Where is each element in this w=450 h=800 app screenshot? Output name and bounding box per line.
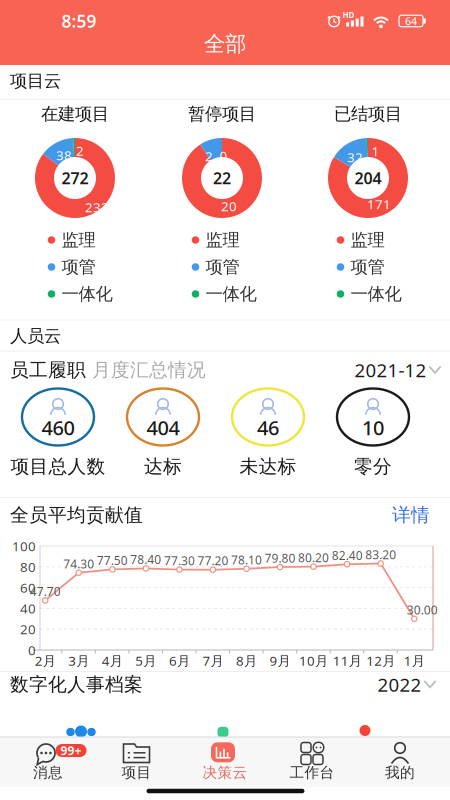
staticText: 零分 — [354, 455, 392, 478]
staticText: 10月 — [299, 652, 328, 669]
staticText: 0 — [28, 641, 36, 659]
staticText: 20 — [20, 620, 36, 638]
staticText: 82.40 — [332, 547, 363, 563]
button[interactable]: 工作台 — [270, 737, 360, 793]
staticText: 1 — [371, 142, 379, 160]
staticText: 项管 — [205, 256, 239, 278]
staticText: 7月 — [202, 652, 223, 669]
staticText: 78.40 — [130, 551, 161, 567]
staticText: 3月 — [68, 652, 89, 669]
staticText: 监理 — [61, 229, 95, 251]
staticText: 79.80 — [264, 550, 295, 566]
staticText: 8:59 — [61, 9, 96, 32]
staticText: 未达标 — [239, 455, 296, 478]
staticText: 171 — [367, 195, 391, 213]
staticText: 监理 — [350, 229, 384, 251]
staticText: 99+ — [60, 742, 81, 758]
staticText: 暂停项目 — [188, 103, 256, 125]
staticText: 一体化 — [205, 283, 256, 305]
staticText: 已结项目 — [334, 103, 402, 125]
button[interactable]: 99+ — [0, 737, 90, 793]
staticText: 12月 — [366, 652, 395, 669]
staticText: 22 — [213, 167, 231, 189]
staticText: 项管 — [61, 256, 95, 278]
staticText: 详情 — [392, 503, 430, 526]
staticText: 监理 — [205, 229, 239, 251]
staticText: 100 — [12, 537, 36, 555]
staticText: 47.70 — [30, 583, 61, 599]
staticText: HD — [342, 10, 354, 20]
staticText: 2 — [205, 147, 213, 165]
staticText: 项管 — [350, 256, 384, 278]
staticText: 消息 — [33, 763, 63, 781]
staticText: 项目云 — [10, 70, 61, 92]
staticText: 项目总人数 — [10, 455, 105, 478]
staticText: 6月 — [169, 652, 190, 669]
staticText: 83.20 — [365, 546, 396, 562]
staticText: 工作台 — [289, 763, 334, 781]
staticText: 我的 — [385, 763, 415, 781]
staticText: 2021-12 — [354, 358, 426, 382]
staticText: 80 — [20, 558, 36, 576]
staticText: 员工履职 — [10, 358, 86, 381]
button[interactable]: 我的 — [360, 737, 450, 793]
staticText: 5月 — [135, 652, 156, 669]
staticText: 80.20 — [298, 550, 329, 565]
staticText: 38 — [56, 146, 72, 164]
staticText: 77.30 — [164, 553, 195, 568]
staticText: 78.10 — [231, 552, 262, 568]
staticText: 46 — [257, 414, 279, 441]
staticText: 8月 — [236, 652, 257, 669]
staticText: 全员平均贡献值 — [10, 503, 143, 526]
staticText: 10 — [362, 414, 384, 441]
staticText: 232 — [85, 198, 109, 216]
staticText: 77.50 — [97, 552, 128, 568]
staticText: 人员云 — [10, 325, 61, 347]
staticText: 30.00 — [407, 602, 438, 618]
staticText: 32 — [347, 148, 363, 166]
staticText: 272 — [61, 167, 88, 189]
staticText: 达标 — [144, 455, 182, 478]
staticText: 204 — [354, 167, 381, 189]
button[interactable]: 2022 — [376, 671, 438, 697]
staticText: 404 — [146, 414, 179, 441]
staticText: 60 — [20, 579, 36, 596]
staticText: 2 — [76, 142, 84, 159]
staticText: 项目 — [121, 763, 151, 781]
staticText: 20 — [221, 197, 237, 215]
staticText: 2022 — [377, 672, 421, 697]
staticText: 1月 — [404, 652, 425, 669]
staticText: 9月 — [269, 652, 290, 669]
staticText: 11月 — [333, 652, 362, 669]
button[interactable]: 决策云 — [180, 737, 270, 793]
staticText: 2月 — [35, 652, 56, 669]
staticText: 0 — [219, 147, 227, 164]
staticText: 74.30 — [63, 556, 94, 572]
staticText: 64 — [405, 14, 417, 28]
staticText: 数字化人事档案 — [10, 673, 143, 696]
staticText: 77.20 — [197, 553, 228, 569]
button[interactable]: 2021-12 — [350, 357, 446, 383]
staticText: 在建项目 — [41, 103, 109, 125]
staticText: 一体化 — [350, 283, 401, 305]
staticText: 40 — [20, 599, 36, 617]
staticText: 460 — [41, 414, 74, 441]
button[interactable]: 详情 — [391, 502, 431, 528]
staticText: 一体化 — [61, 283, 112, 305]
staticText: 全部 — [204, 31, 246, 57]
staticText: 月度汇总情况 — [92, 358, 206, 381]
button[interactable]: 项目 — [90, 737, 180, 793]
staticText: 4月 — [102, 652, 123, 669]
staticText: 决策云 — [202, 763, 247, 781]
